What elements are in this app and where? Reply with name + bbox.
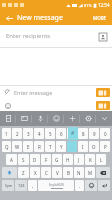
staticText: W: [15, 144, 20, 150]
button[interactable]: H: [63, 154, 73, 165]
button[interactable]: P: [100, 141, 110, 152]
button[interactable]: 2: [12, 128, 22, 139]
staticText: 5: [49, 131, 52, 137]
button[interactable]: Send: [96, 88, 110, 97]
button[interactable]: .: [75, 180, 84, 191]
staticText: F: [45, 157, 48, 163]
button[interactable]: S: [18, 154, 29, 165]
staticText: 3: [27, 131, 30, 137]
staticText: P: [104, 144, 107, 150]
button[interactable]: Back: [4, 13, 14, 23]
button[interactable]: Audio: [32, 111, 48, 126]
staticText: 12:54: [98, 2, 110, 8]
button[interactable]: 5: [45, 128, 55, 139]
staticText: J: [78, 157, 80, 163]
button[interactable]: L: [96, 154, 106, 165]
button[interactable]: Emoji: [3, 101, 12, 110]
staticText: New message: [17, 13, 92, 23]
staticText: T: [49, 144, 52, 150]
staticText: 81%: [84, 3, 92, 8]
button[interactable]: Y: [56, 141, 66, 152]
button[interactable]: Shift: [2, 167, 17, 178]
staticText: Y: [60, 144, 63, 150]
button[interactable]: ,: [28, 180, 37, 191]
staticText: 7: [71, 131, 74, 137]
button[interactable]: Emoticon: [48, 111, 64, 126]
staticText: Enter message: [14, 89, 96, 96]
button[interactable]: Enter recipients: [0, 25, 112, 47]
button[interactable]: Z: [18, 167, 29, 178]
staticText: 6: [60, 131, 63, 137]
button[interactable]: G: [52, 154, 62, 165]
staticText: #: [71, 130, 75, 137]
button[interactable]: R: [34, 141, 44, 152]
button[interactable]: V: [52, 167, 62, 178]
staticText: R: [38, 144, 41, 150]
staticText: 4: [38, 131, 41, 137]
button[interactable]: A: [6, 154, 17, 165]
staticText: M: [88, 170, 93, 176]
staticText: K: [89, 157, 92, 163]
button[interactable]: I: [78, 141, 88, 152]
button[interactable]: Gallery: [0, 111, 16, 126]
staticText: X: [34, 170, 37, 176]
button[interactable]: W: [12, 141, 22, 152]
button[interactable]: 9: [89, 128, 99, 139]
button[interactable]: E: [23, 141, 33, 152]
button[interactable]: 1: [2, 128, 11, 139]
button[interactable]: MORE: [92, 15, 108, 21]
button[interactable]: Settings: [80, 111, 96, 126]
button[interactable]: T: [45, 141, 55, 152]
staticText: D: [33, 157, 37, 163]
button[interactable]: 8: [78, 128, 88, 139]
button[interactable]: Add contact: [98, 32, 107, 41]
button[interactable]: Space: [38, 180, 74, 191]
button[interactable]: C: [41, 167, 51, 178]
staticText: 123: [18, 183, 25, 188]
button[interactable]: Send: [96, 101, 110, 110]
staticText: O: [92, 144, 96, 150]
staticText: V: [56, 170, 59, 176]
staticText: L: [100, 157, 103, 163]
staticText: A: [10, 157, 13, 163]
button[interactable]: 6: [56, 128, 66, 139]
staticText: E: [27, 144, 30, 150]
button[interactable]: Q: [2, 141, 11, 152]
button[interactable]: X: [30, 167, 40, 178]
staticText: .: [79, 183, 81, 189]
staticText: Q: [5, 144, 9, 150]
button[interactable]: Sym: [2, 180, 14, 191]
staticText: 1: [5, 131, 8, 137]
staticText: S: [22, 157, 25, 163]
button[interactable]: B: [63, 167, 73, 178]
button[interactable]: 123: [15, 180, 27, 191]
button[interactable]: 4: [34, 128, 44, 139]
button[interactable]: J: [74, 154, 84, 165]
button[interactable]: F: [41, 154, 51, 165]
staticText: B: [67, 170, 70, 176]
staticText: 9: [93, 131, 96, 137]
button[interactable]: Emoji keyboard: [85, 180, 97, 191]
button[interactable]: D: [30, 154, 40, 165]
staticText: Enter recipients: [6, 32, 98, 40]
button[interactable]: 7: [67, 128, 77, 139]
button[interactable]: Images: [16, 111, 32, 126]
button[interactable]: M: [85, 167, 95, 178]
button[interactable]: Location: [64, 111, 80, 126]
button[interactable]: K: [85, 154, 95, 165]
staticText: G: [55, 157, 59, 163]
staticText: 8: [82, 131, 85, 137]
staticText: 2: [16, 131, 19, 137]
button[interactable]: 3: [23, 128, 33, 139]
button[interactable]: 0: [100, 128, 110, 139]
button[interactable]: Collapse: [96, 111, 112, 126]
staticText: Sym: [5, 183, 12, 188]
staticText: MORE: [93, 15, 107, 21]
button[interactable]: Attach: [3, 88, 12, 97]
button[interactable]: O: [89, 141, 99, 152]
button[interactable]: N: [74, 167, 84, 178]
button[interactable]: Backspace: [96, 167, 110, 178]
button[interactable]: Enter: [98, 180, 110, 191]
